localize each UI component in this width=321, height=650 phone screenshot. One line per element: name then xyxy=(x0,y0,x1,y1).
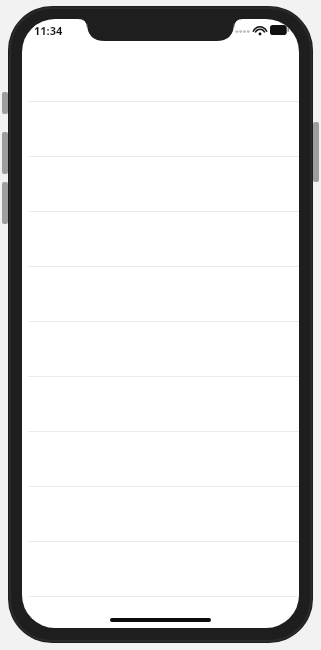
staticText: 11:34 xyxy=(34,23,63,38)
other: Home indicator xyxy=(110,618,211,622)
button[interactable] xyxy=(22,597,299,628)
